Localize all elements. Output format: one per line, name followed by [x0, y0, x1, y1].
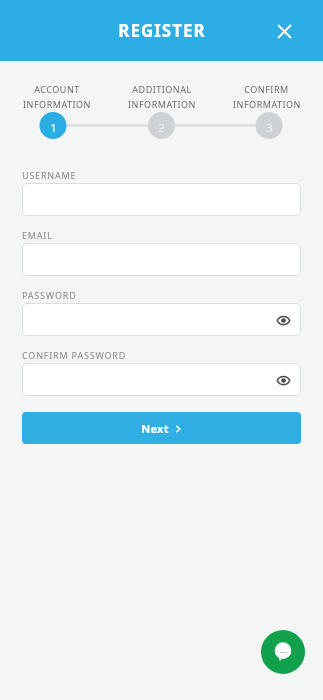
- staticText: 1: [50, 120, 57, 135]
- button[interactable]: Show password: [273, 310, 293, 330]
- button[interactable]: ACCOUNT: [4, 83, 109, 110]
- staticText: INFORMATION: [128, 98, 196, 110]
- staticText: 2: [158, 120, 165, 135]
- staticText: CONFIRM PASSWORD: [22, 349, 127, 361]
- staticText: CONFIRM: [244, 83, 289, 95]
- button[interactable]: Show password: [273, 370, 293, 390]
- staticText: USERNAME: [22, 169, 77, 181]
- button[interactable]: [22, 243, 301, 276]
- button[interactable]: Show password: [22, 363, 301, 396]
- staticText: EMAIL: [22, 229, 53, 241]
- button[interactable]: 1: [40, 114, 67, 141]
- button[interactable]: ADDITIONAL: [109, 83, 214, 110]
- staticText: Next: [141, 421, 169, 436]
- staticText: INFORMATION: [233, 98, 301, 110]
- button[interactable]: 3: [256, 114, 283, 141]
- staticText: PASSWORD: [22, 289, 77, 301]
- button[interactable]: [22, 183, 301, 216]
- button[interactable]: CONFIRM: [214, 83, 319, 110]
- staticText: ADDITIONAL: [132, 83, 192, 95]
- button[interactable]: Close: [269, 16, 299, 46]
- button[interactable]: 2: [148, 114, 175, 141]
- button[interactable]: Chat: [261, 630, 305, 674]
- staticText: REGISTER: [118, 19, 206, 42]
- staticText: ACCOUNT: [34, 83, 80, 95]
- button[interactable]: Next: [22, 412, 301, 444]
- button[interactable]: Show password: [22, 303, 301, 336]
- staticText: 3: [266, 120, 273, 135]
- staticText: INFORMATION: [23, 98, 91, 110]
